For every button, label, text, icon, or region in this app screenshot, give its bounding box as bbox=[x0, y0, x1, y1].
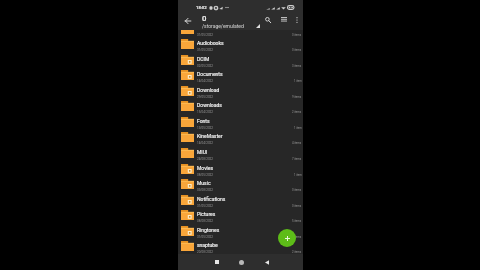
staticText: 02/05/2022 bbox=[197, 64, 213, 68]
staticText: 29/05/2022 bbox=[197, 95, 213, 99]
staticText: /storage/emulated bbox=[202, 23, 244, 29]
staticText: 5 items bbox=[292, 219, 302, 222]
staticText: 4 items bbox=[292, 141, 302, 144]
staticText: 3 items bbox=[292, 64, 302, 67]
button[interactable]: snaptube bbox=[178, 239, 303, 254]
staticText: 31/05/2022 bbox=[197, 204, 213, 208]
button[interactable]: Pictures bbox=[178, 208, 303, 224]
button[interactable]: Alarms bbox=[178, 30, 303, 38]
staticText: 7 items bbox=[292, 157, 302, 160]
button[interactable]: Download bbox=[178, 84, 303, 100]
staticText: 13/05/2022 bbox=[197, 126, 213, 130]
button[interactable]: Music bbox=[178, 177, 303, 193]
staticText: 0 bbox=[202, 14, 207, 23]
staticText: DCIM bbox=[197, 56, 210, 62]
staticText: 08/08/2022 bbox=[197, 219, 213, 223]
button[interactable]: Home bbox=[234, 255, 248, 269]
staticText: 31/05/2022 bbox=[197, 48, 213, 52]
button[interactable]: Recents bbox=[210, 255, 224, 269]
staticText: Music bbox=[197, 180, 211, 186]
button[interactable]: More options bbox=[290, 13, 303, 26]
staticText: 1 item bbox=[294, 173, 302, 176]
button[interactable]: Search bbox=[261, 13, 274, 26]
staticText: 18:02 bbox=[196, 5, 207, 10]
button[interactable]: Downloads bbox=[178, 99, 303, 115]
button[interactable]: Movies bbox=[178, 162, 303, 178]
staticText: 14/04/2022 bbox=[197, 79, 213, 83]
staticText: 03/08/2022 bbox=[197, 188, 213, 192]
staticText: Pictures bbox=[197, 211, 216, 217]
button[interactable]: Back bbox=[260, 255, 274, 269]
staticText: 15/04/2022 bbox=[197, 110, 213, 114]
staticText: 0 items bbox=[292, 33, 302, 36]
button[interactable]: Documents bbox=[178, 68, 303, 84]
button[interactable]: Audiobooks bbox=[178, 37, 303, 53]
staticText: 0 items bbox=[292, 48, 302, 51]
staticText: 2 items bbox=[292, 250, 302, 253]
button[interactable]: Add bbox=[278, 229, 296, 247]
button[interactable]: Ringtones bbox=[178, 224, 303, 240]
staticText: Notifications bbox=[197, 196, 226, 202]
button[interactable]: MIUI bbox=[178, 146, 303, 162]
staticText: 0 items bbox=[292, 188, 302, 191]
staticText: 2 items bbox=[292, 110, 302, 113]
staticText: KineMaster bbox=[197, 133, 223, 139]
staticText: Movies bbox=[197, 165, 214, 171]
staticText: Ringtones bbox=[197, 227, 220, 233]
staticText: Audiobooks bbox=[197, 40, 224, 46]
staticText: Download bbox=[197, 87, 220, 93]
staticText: Fonts bbox=[197, 118, 210, 124]
staticText: 08/05/2022 bbox=[197, 173, 213, 177]
button[interactable]: Notifications bbox=[178, 193, 303, 209]
button[interactable]: KineMaster bbox=[178, 130, 303, 146]
staticText: 20/08/2022 bbox=[197, 250, 213, 254]
button[interactable]: Back bbox=[182, 15, 194, 27]
staticText: Documents bbox=[197, 71, 223, 77]
staticText: 1 item bbox=[294, 126, 302, 129]
staticText: snaptube bbox=[197, 242, 218, 248]
staticText: 31/05/2022 bbox=[197, 235, 213, 239]
staticText: 24/08/2022 bbox=[197, 157, 213, 161]
button[interactable]: DCIM bbox=[178, 53, 303, 69]
staticText: 9 items bbox=[292, 95, 302, 98]
staticText: 14/04/2022 bbox=[197, 141, 213, 145]
button[interactable]: Fonts bbox=[178, 115, 303, 131]
staticText: 31/05/2022 bbox=[197, 33, 213, 37]
staticText: 1 item bbox=[294, 79, 302, 82]
staticText: Downloads bbox=[197, 102, 222, 108]
staticText: MIUI bbox=[197, 149, 208, 155]
staticText: 0 items bbox=[292, 235, 302, 238]
staticText: 0 items bbox=[292, 204, 302, 207]
button[interactable]: View mode bbox=[277, 13, 290, 26]
